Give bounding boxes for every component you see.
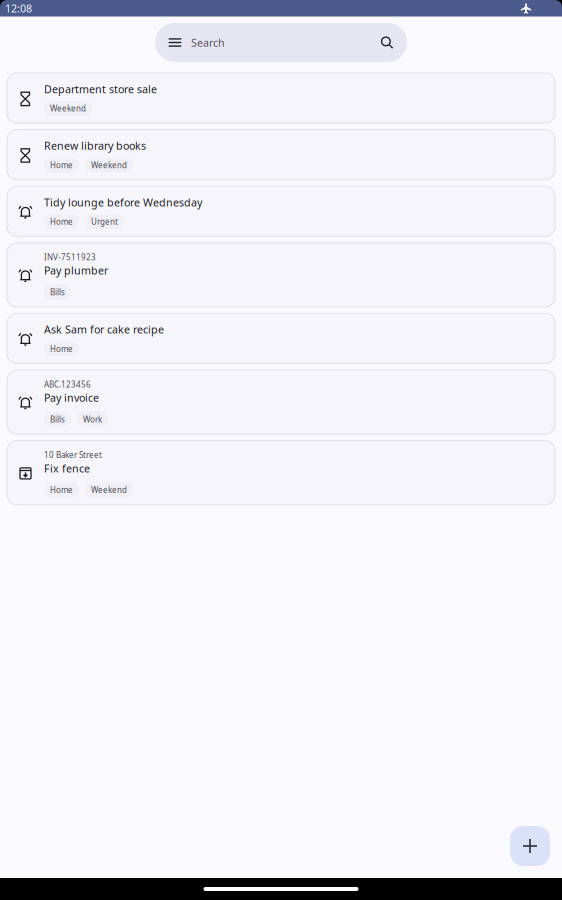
staticText: Urgent	[91, 216, 118, 227]
staticText: Work	[83, 414, 102, 425]
button[interactable]: Renew library books	[7, 130, 555, 180]
staticText: Home	[50, 485, 73, 495]
button[interactable]: ABC.123456	[7, 370, 555, 434]
staticText: Ask Sam for cake recipe	[44, 322, 164, 337]
staticText: ABC.123456	[44, 379, 91, 390]
button[interactable]: Search	[155, 23, 407, 62]
staticText: 10 Baker Street	[44, 450, 102, 460]
staticText: Weekend	[91, 160, 127, 170]
button[interactable]: 10 Baker Street	[7, 441, 555, 505]
button[interactable]: Department store sale	[7, 73, 555, 123]
staticText: Home	[50, 160, 73, 170]
staticText: Home	[50, 344, 73, 354]
button[interactable]: Ask Sam for cake recipe	[7, 313, 555, 364]
staticText: Tidy lounge before Wednesday	[44, 195, 202, 209]
staticText: Search	[191, 35, 225, 50]
staticText: Bills	[50, 287, 65, 297]
staticText: Weekend	[91, 485, 127, 495]
staticText: Weekend	[50, 103, 86, 114]
staticText: Renew library books	[44, 139, 146, 153]
staticText: Department store sale	[44, 82, 157, 96]
staticText: Bills	[50, 414, 65, 425]
button[interactable]: Add task	[510, 826, 550, 866]
button[interactable]: INV-7511923	[7, 243, 555, 307]
staticText: Home	[50, 216, 73, 227]
staticText: INV-7511923	[44, 252, 96, 262]
staticText: Pay invoice	[44, 391, 99, 405]
staticText: 12:08	[5, 1, 32, 15]
staticText: Fix fence	[44, 461, 90, 475]
button[interactable]: Tidy lounge before Wednesday	[7, 186, 555, 236]
staticText: Pay plumber	[44, 263, 108, 278]
